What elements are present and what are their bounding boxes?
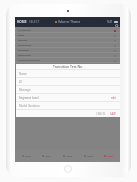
button[interactable]: SAVE [110, 112, 116, 116]
button[interactable]: Tab 5 [99, 150, 118, 162]
staticText: Value or Theme [58, 20, 81, 24]
button[interactable]: CANCEL [96, 112, 106, 116]
button[interactable]: Tab 2 [37, 150, 56, 162]
staticText: SELECT [29, 20, 40, 24]
staticText: Name [19, 72, 27, 76]
button[interactable] [15, 58, 120, 63]
button[interactable]: Model Variation [16, 102, 120, 110]
staticText: ID [19, 80, 22, 84]
staticText: CANCEL [96, 112, 106, 116]
button[interactable] [15, 48, 120, 53]
staticText: Transition Test No. [53, 64, 84, 69]
staticText: HOME [17, 20, 27, 24]
button[interactable] [15, 33, 120, 38]
staticText: Segment Level [19, 96, 39, 100]
staticText: 9:41 [107, 20, 113, 24]
staticText: Model Variation [19, 104, 40, 108]
button[interactable]: Search [114, 23, 119, 28]
button[interactable] [15, 28, 120, 33]
button[interactable]: Segment Level [16, 94, 120, 102]
button[interactable] [15, 43, 120, 48]
staticText: Message [19, 88, 31, 92]
button[interactable]: Tab 3 [58, 150, 77, 162]
button[interactable]: ID [16, 78, 120, 86]
staticText: edit [111, 96, 117, 100]
staticText: SAVE [110, 112, 116, 116]
button[interactable]: Message [16, 86, 120, 94]
button[interactable]: Tab 4 [79, 150, 98, 162]
button[interactable] [15, 38, 120, 43]
button[interactable] [15, 53, 120, 58]
button[interactable]: Tab 1 [17, 150, 36, 162]
button[interactable]: Name [16, 70, 120, 78]
